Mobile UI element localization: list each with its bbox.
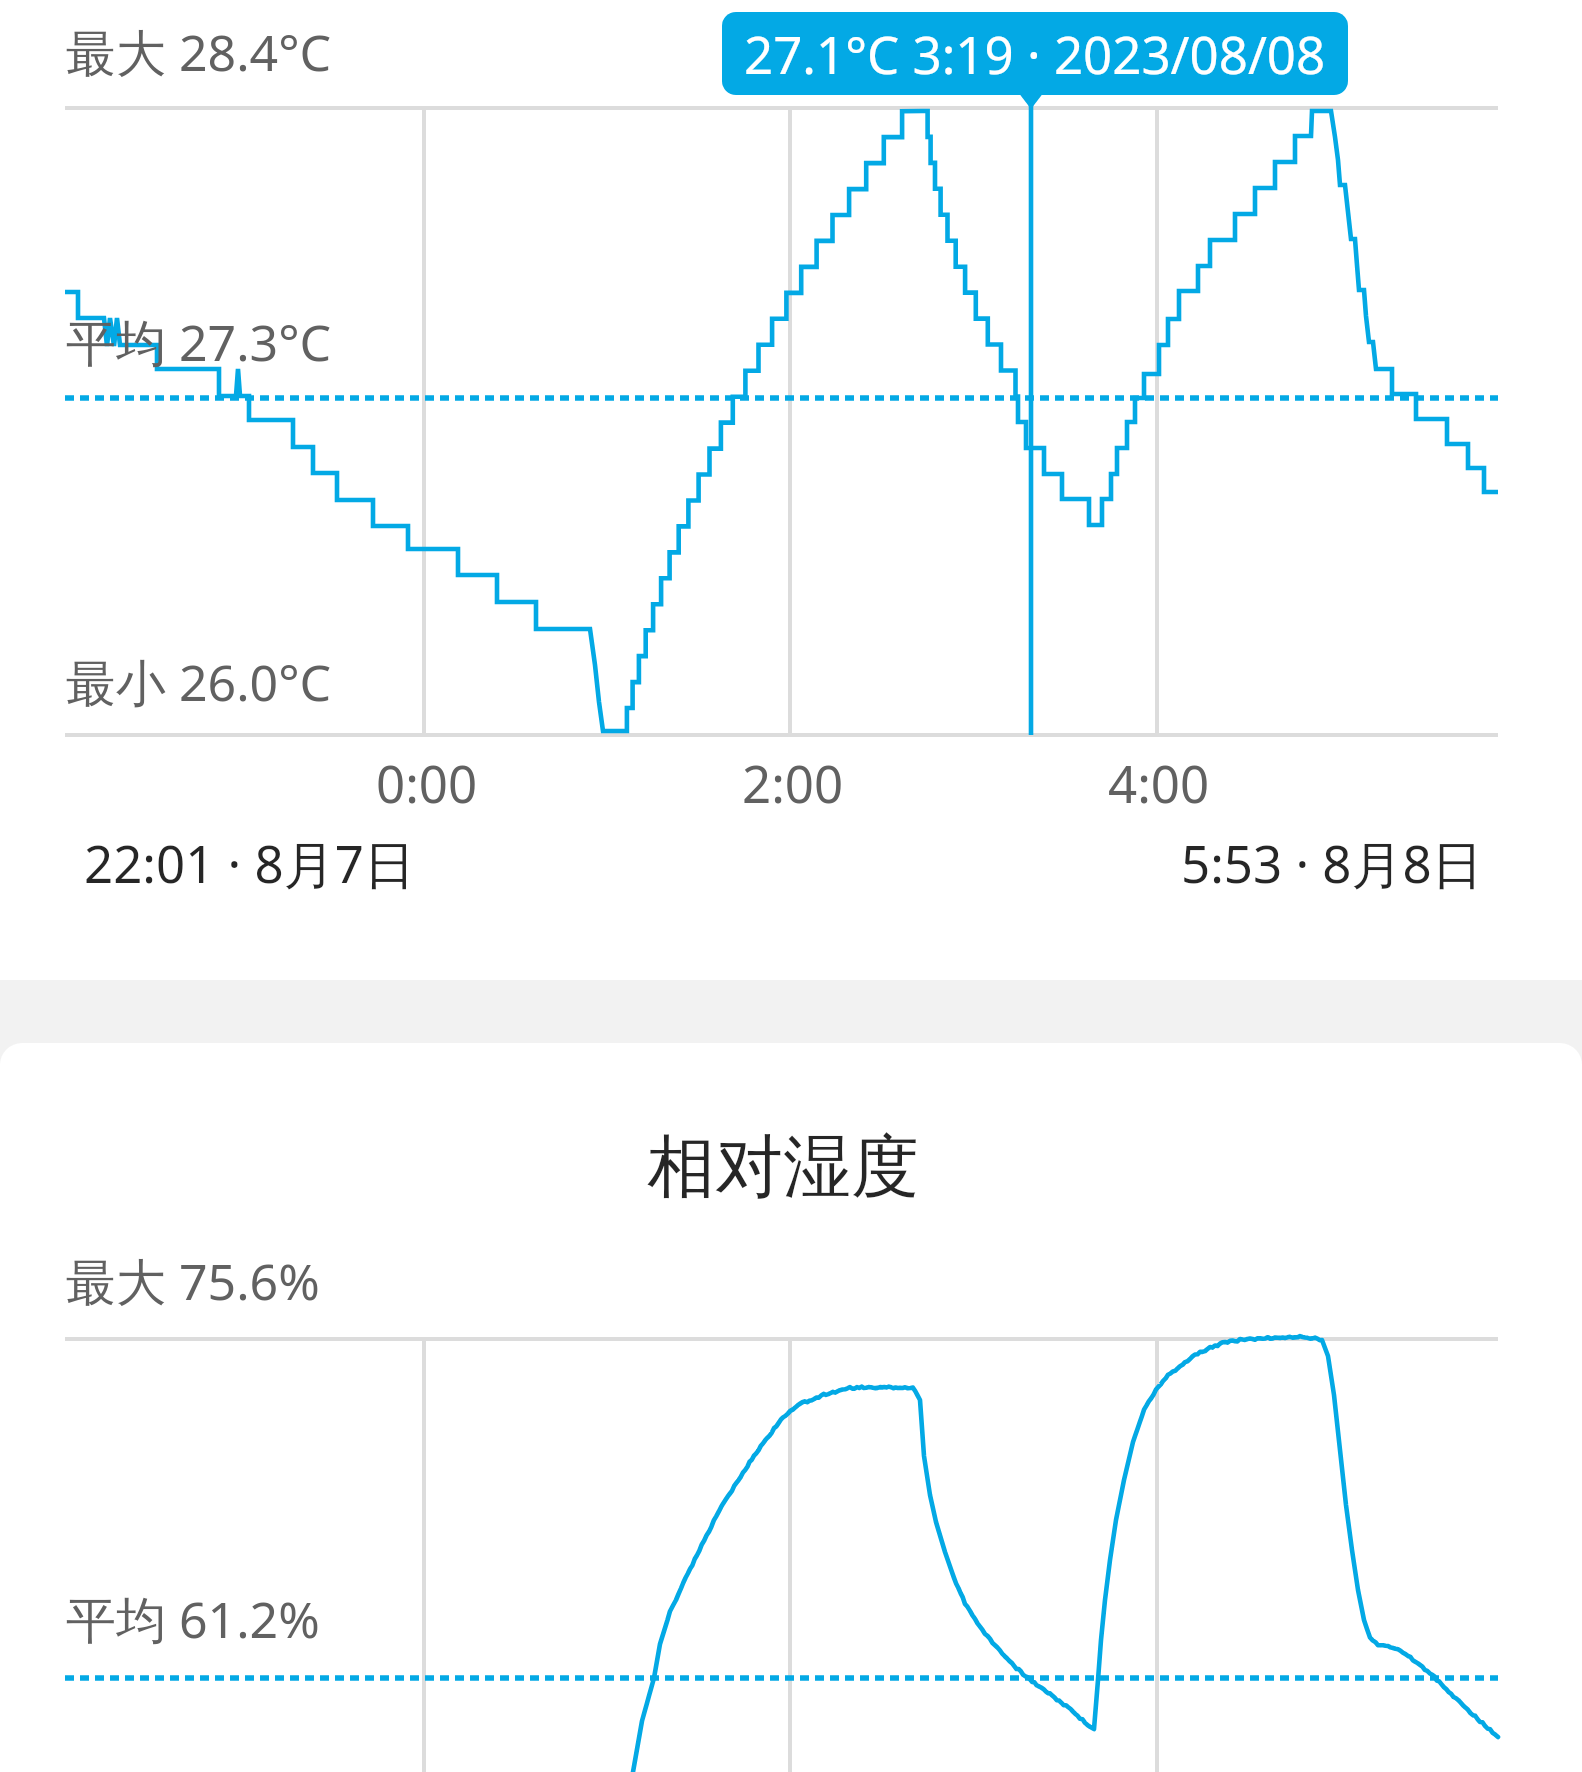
button[interactable]: 相对湿度图表: [0, 1043, 1582, 1772]
staticText: 最大 28.4°C: [66, 18, 332, 86]
staticText: 平均 61.2%: [66, 1585, 320, 1653]
button[interactable]: 27.1°C 3:19 · 2023/08/08: [722, 12, 1348, 95]
staticText: 5:53 · 8月8日: [1181, 828, 1483, 898]
staticText: 0:00: [376, 748, 478, 817]
button[interactable]: 温度图表: [65, 108, 1498, 735]
staticText: 22:01 · 8月7日: [84, 828, 415, 898]
staticText: 4:00: [1108, 748, 1210, 817]
staticText: 平均 27.3°C: [66, 308, 332, 376]
staticText: 相对湿度: [0, 1125, 1574, 1211]
staticText: 27.1°C 3:19 · 2023/08/08: [744, 19, 1326, 88]
staticText: 最小 26.0°C: [66, 648, 332, 716]
staticText: 2:00: [742, 748, 844, 817]
staticText: 最大 75.6%: [66, 1247, 320, 1315]
button[interactable]: 相对湿度图表: [65, 1339, 1498, 1772]
